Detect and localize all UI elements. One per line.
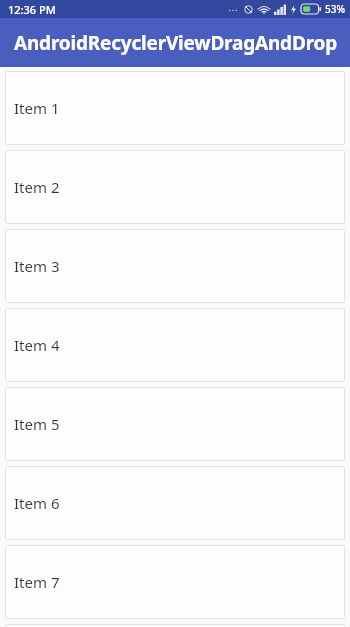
button[interactable]: Item 4	[5, 308, 345, 382]
staticText: Item 4	[14, 335, 60, 355]
staticText: Item 6	[14, 493, 60, 513]
button[interactable]: Item 7	[5, 545, 345, 619]
staticText: AndroidRecyclerViewDragAndDrop	[14, 30, 338, 56]
staticText: 12:36 PM	[8, 2, 56, 17]
button[interactable]: Item 6	[5, 466, 345, 540]
button[interactable]: Item 2	[5, 150, 345, 224]
staticText: Item 2	[14, 177, 60, 197]
button[interactable]: Item 8	[5, 624, 345, 627]
button[interactable]: Item 1	[5, 71, 345, 145]
staticText: Item 7	[14, 572, 60, 592]
button[interactable]: Item 3	[5, 229, 345, 303]
staticText: 53%	[325, 2, 345, 16]
staticText: Item 5	[14, 414, 60, 434]
staticText: Item 1	[14, 98, 60, 118]
button[interactable]: Item 5	[5, 387, 345, 461]
staticText: Item 3	[14, 256, 60, 276]
